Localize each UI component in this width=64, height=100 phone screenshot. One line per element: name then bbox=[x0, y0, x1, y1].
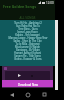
staticText: Tere Bina - Guru bbox=[18, 27, 38, 30]
button[interactable]: Banjaara - Ek Villain bbox=[0, 48, 55, 51]
staticText: Muskurane Ki Wajah bbox=[15, 45, 40, 48]
button[interactable]: Back bbox=[6, 89, 17, 100]
staticText: Free Golden Songs bbox=[3, 4, 36, 9]
staticText: Bolna - Kapoor & Sons bbox=[14, 57, 42, 60]
button[interactable]: Tum Hi Ho - Aashiqui 2 bbox=[0, 21, 55, 24]
button[interactable]: Manwa Laage - Happy New Year bbox=[0, 36, 55, 39]
button[interactable]: Bolna - Kapoor & Sons bbox=[0, 57, 55, 60]
staticText: ALL SONGS bbox=[0, 16, 55, 20]
staticText: Manwa Laage - Happy New Year bbox=[8, 36, 48, 39]
button[interactable]: Muskurane Ki Wajah bbox=[0, 45, 55, 48]
button[interactable]: Sanam Re - Title Song bbox=[0, 54, 55, 57]
button[interactable]: Download Now bbox=[2, 83, 53, 87]
button[interactable]: Tere Bina - Guru bbox=[0, 27, 55, 30]
button[interactable]: Play video ad bbox=[5, 71, 50, 80]
button[interactable]: Hamari Adhuri Kahani bbox=[0, 51, 55, 54]
staticText: Kabira - Yeh Jawaani bbox=[15, 33, 40, 36]
button[interactable]: Sun Raha Hai Na Tu bbox=[0, 24, 55, 27]
staticText: 12:00 bbox=[46, 1, 54, 5]
staticText: Jeene Laga Hoon bbox=[17, 30, 38, 33]
button[interactable]: Recent apps bbox=[39, 89, 50, 100]
button[interactable]: Kabira - Yeh Jawaani bbox=[0, 33, 55, 36]
staticText: Download Now bbox=[18, 83, 38, 87]
staticText: Tu Jo Mila - Bajrangi bbox=[15, 42, 40, 45]
staticText: Hamari Adhuri Kahani bbox=[14, 51, 41, 54]
button[interactable]: Tu Jo Mila - Bajrangi bbox=[0, 42, 55, 45]
staticText: Sun Raha Hai Na Tu bbox=[16, 24, 40, 27]
staticText: Sanam Re - Title Song bbox=[14, 54, 41, 57]
button[interactable]: Jeene Laga Hoon bbox=[0, 30, 55, 33]
staticText: Banjaara - Ek Villain bbox=[16, 48, 40, 51]
button[interactable]: Saibo - Shor In The City bbox=[0, 39, 55, 42]
staticText: Tum Hi Ho - Aashiqui 2 bbox=[14, 21, 42, 24]
button[interactable]: Home bbox=[22, 89, 33, 100]
staticText: Saibo - Shor In The City bbox=[13, 39, 42, 42]
